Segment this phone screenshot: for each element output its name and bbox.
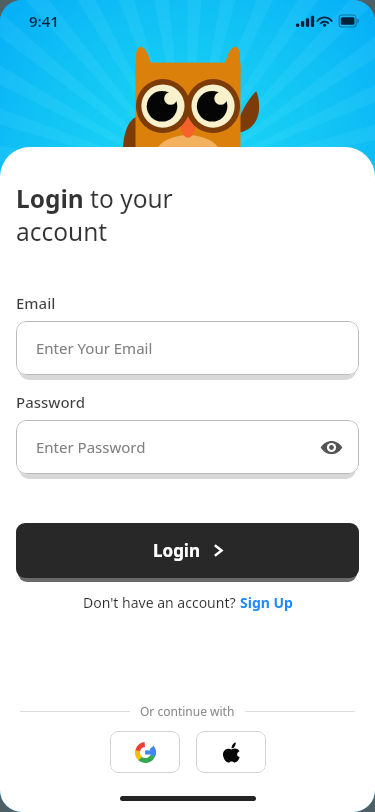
button[interactable]: Sign Up [240, 593, 293, 612]
button[interactable]: Enter Your Email [16, 321, 359, 375]
button[interactable]: Sign in with Apple [196, 731, 266, 773]
staticText: Email [16, 293, 56, 313]
staticText: 9:41 [29, 11, 59, 31]
staticText: Login to your account [16, 182, 198, 248]
staticText: Enter Password [36, 437, 146, 457]
staticText: Or continue with [140, 703, 235, 719]
staticText: Password [16, 392, 85, 412]
button[interactable]: Enter Password [16, 420, 359, 474]
staticText: Login [153, 539, 201, 562]
staticText: Don't have an account? [83, 593, 240, 612]
staticText: Enter Your Email [36, 338, 153, 358]
button[interactable]: Sign in with Google [110, 731, 180, 773]
button[interactable]: Login [16, 523, 359, 578]
other: Show password [320, 436, 343, 459]
